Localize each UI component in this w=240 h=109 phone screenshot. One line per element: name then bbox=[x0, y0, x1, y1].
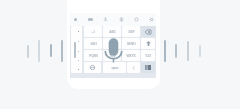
button[interactable]: 123 bbox=[141, 50, 155, 61]
button[interactable]: Emoji bbox=[115, 13, 127, 25]
button[interactable]: Voice input bbox=[99, 13, 111, 25]
button[interactable]: WXYZ bbox=[122, 50, 140, 61]
button[interactable]: PQRS bbox=[84, 50, 102, 61]
button[interactable]: TUV bbox=[103, 50, 121, 61]
button[interactable] bbox=[141, 38, 155, 49]
staticText: ABC bbox=[109, 29, 116, 34]
button[interactable]: MNO bbox=[122, 38, 140, 49]
staticText: :-) bbox=[91, 29, 95, 34]
button[interactable]: Stickers bbox=[130, 13, 142, 25]
staticText: ./, bbox=[132, 66, 135, 70]
button[interactable]: GHI bbox=[84, 38, 102, 49]
button[interactable]: Apps bbox=[69, 13, 81, 25]
button[interactable] bbox=[84, 62, 101, 73]
button[interactable]: space bbox=[103, 62, 126, 73]
staticText: PQRS bbox=[89, 53, 98, 58]
staticText: MNO bbox=[127, 41, 136, 46]
staticText: DEF bbox=[128, 29, 135, 34]
button[interactable]: :-) bbox=[84, 26, 102, 37]
staticText: GHI bbox=[90, 41, 97, 46]
staticText: TUV bbox=[109, 53, 116, 58]
button[interactable]: Resize keyboard bbox=[71, 26, 82, 73]
button[interactable] bbox=[141, 62, 155, 73]
button[interactable]: JKL bbox=[103, 38, 121, 49]
staticText: WXYZ bbox=[126, 53, 136, 58]
button[interactable]: ./, bbox=[127, 62, 140, 73]
button[interactable] bbox=[141, 26, 155, 37]
staticText: space bbox=[111, 66, 119, 70]
button[interactable]: DEF bbox=[122, 26, 140, 37]
staticText: 123 bbox=[145, 53, 151, 58]
button[interactable]: ABC bbox=[103, 26, 121, 37]
button[interactable]: Keyboard bbox=[84, 13, 96, 25]
button[interactable]: Settings bbox=[145, 13, 157, 25]
